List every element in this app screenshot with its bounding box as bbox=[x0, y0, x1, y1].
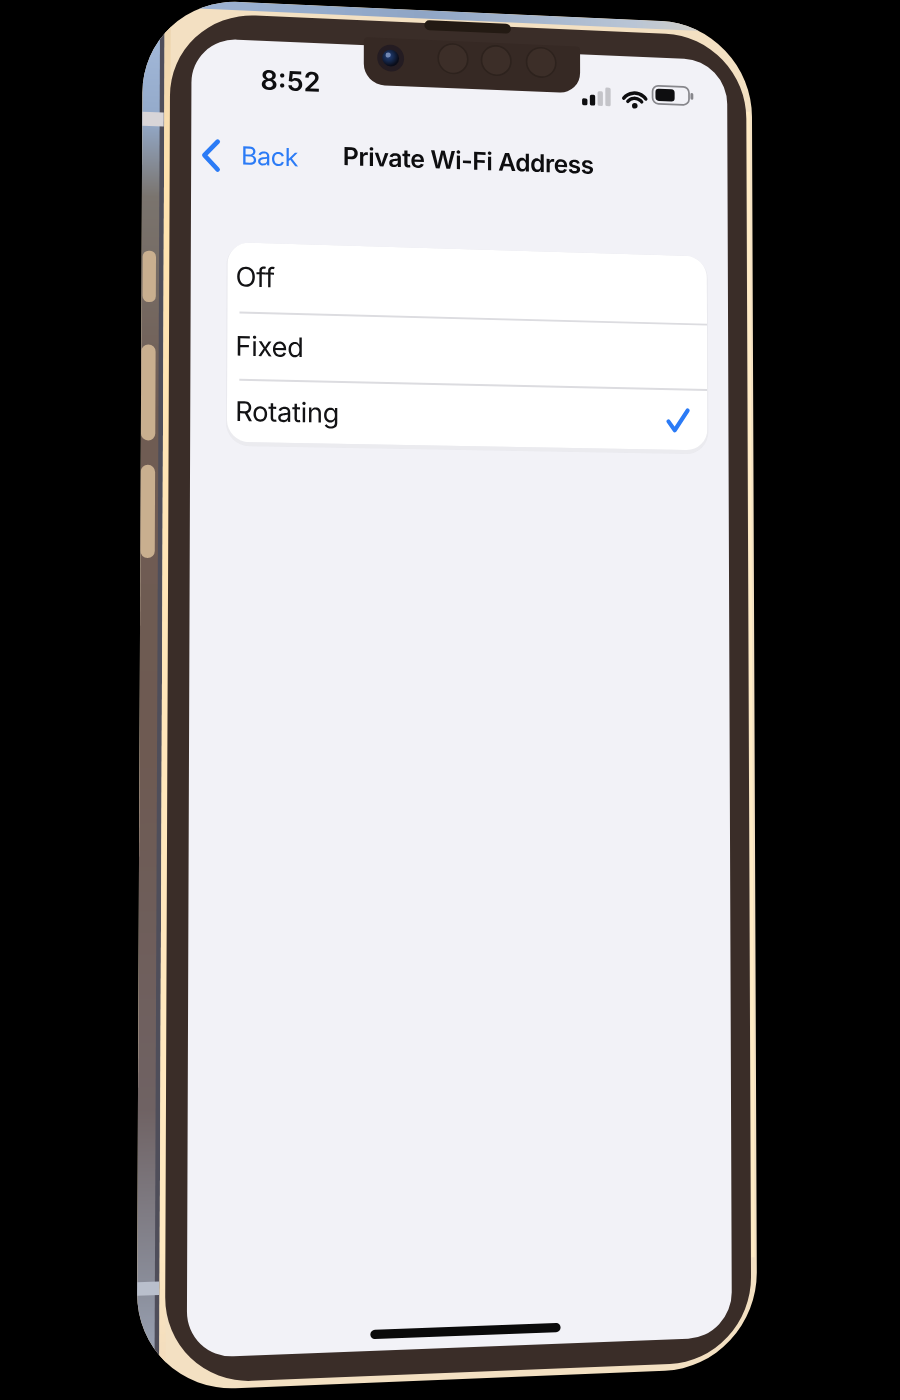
staticText: Private Wi-Fi Address bbox=[343, 141, 594, 180]
staticText: Back bbox=[241, 140, 298, 172]
staticText: 8:52 bbox=[260, 63, 321, 99]
button[interactable]: Off bbox=[227, 242, 707, 324]
staticText: Off bbox=[235, 260, 275, 294]
staticText: Fixed bbox=[235, 329, 304, 364]
button[interactable]: Rotating bbox=[227, 380, 707, 450]
staticText: Rotating bbox=[235, 395, 339, 430]
button[interactable]: Fixed bbox=[227, 313, 707, 389]
button[interactable]: Back bbox=[195, 132, 317, 180]
